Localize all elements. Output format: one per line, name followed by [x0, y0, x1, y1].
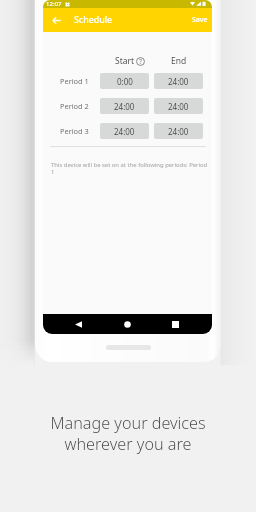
- staticText: Save: [192, 15, 208, 25]
- staticText: 24:00: [168, 76, 189, 87]
- staticText: Period 1: [60, 76, 89, 86]
- staticText: End: [171, 55, 187, 67]
- button[interactable]: Back: [49, 13, 63, 27]
- staticText: ?: [139, 57, 142, 66]
- button[interactable]: 24:00: [154, 73, 203, 89]
- button[interactable]: 24:00: [154, 123, 203, 139]
- button[interactable]: Recent apps: [168, 317, 182, 331]
- button[interactable]: 24:00: [154, 98, 203, 114]
- staticText: Manage your devices wherever you are: [50, 412, 206, 455]
- staticText: Period 2: [60, 101, 89, 111]
- staticText: This device will be set on at the follow…: [51, 161, 212, 176]
- staticText: 24:00: [168, 101, 189, 112]
- staticText: 24:00: [114, 101, 135, 112]
- button[interactable]: Save: [192, 15, 212, 25]
- button[interactable]: 0:00: [100, 73, 149, 89]
- staticText: 24:00: [168, 126, 189, 137]
- button[interactable]: 24:00: [100, 123, 149, 139]
- staticText: Period 3: [60, 126, 89, 136]
- staticText: 24:00: [114, 126, 135, 137]
- staticText: 12:07: [46, 0, 62, 8]
- button[interactable]: 24:00: [100, 98, 149, 114]
- button[interactable]: Help about start time: [136, 57, 145, 66]
- staticText: 0:00: [117, 76, 133, 87]
- button[interactable]: Home: [120, 317, 134, 331]
- button[interactable]: Back: [71, 317, 85, 331]
- staticText: Schedule: [74, 14, 113, 26]
- staticText: Start: [115, 55, 135, 67]
